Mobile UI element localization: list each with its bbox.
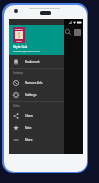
button[interactable]: More xyxy=(9,134,64,146)
staticText: Remove Ads xyxy=(25,81,43,85)
button[interactable]: Rate xyxy=(9,122,64,134)
staticText: Other xyxy=(13,104,21,108)
staticText: Rate xyxy=(25,126,32,130)
button[interactable]: Bookmark xyxy=(9,56,64,68)
staticText: More xyxy=(25,138,33,142)
button[interactable]: Remove Ads xyxy=(9,77,64,89)
staticText: Literature xyxy=(15,28,23,30)
staticText: stylelabs@outlook.com xyxy=(13,49,41,52)
staticText: Classics xyxy=(16,40,22,42)
staticText: Bookmark xyxy=(25,60,40,64)
staticText: Style Ltd. xyxy=(13,44,28,48)
staticText: Share xyxy=(25,114,34,118)
button[interactable]: Account xyxy=(73,28,82,37)
staticText: Settings xyxy=(13,71,23,75)
button[interactable]: Search xyxy=(64,28,72,36)
button[interactable]: Share xyxy=(9,110,64,122)
button[interactable]: Settings xyxy=(9,89,64,101)
staticText: Settings xyxy=(25,93,37,97)
